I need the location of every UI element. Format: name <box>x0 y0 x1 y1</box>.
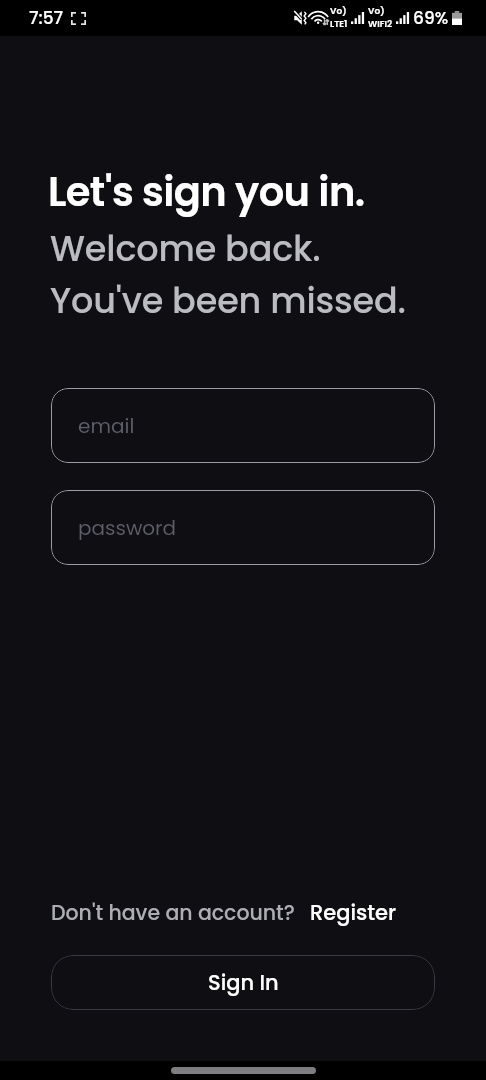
staticText: 7:57 <box>29 6 64 30</box>
staticText: WIFI2 <box>368 18 393 31</box>
other: Ringer muted, vibrate <box>294 11 307 25</box>
button[interactable]: Sign In <box>51 955 435 1010</box>
other: Wi-Fi connected <box>311 12 328 25</box>
staticText: LTE1 <box>330 18 348 31</box>
other: Home <box>171 1067 316 1074</box>
button[interactable]: Register <box>310 898 397 927</box>
button[interactable]: email <box>51 388 435 463</box>
staticText: 69% <box>413 6 449 30</box>
staticText: Vo) <box>330 5 347 18</box>
staticText: password <box>78 514 177 542</box>
staticText: Vo) <box>368 5 385 18</box>
other: Screenshot <box>71 12 86 25</box>
other: Signal strength <box>396 12 409 24</box>
other: Signal strength <box>351 12 364 24</box>
staticText: Don't have an account? <box>51 898 295 927</box>
staticText: Sign In <box>208 968 279 997</box>
staticText: Register <box>310 898 397 927</box>
staticText: Welcome back. You've been missed. <box>50 224 406 325</box>
staticText: Let's sign you in. <box>48 164 365 220</box>
other: Battery 69 percent <box>452 11 462 25</box>
staticText: email <box>78 412 135 440</box>
button[interactable]: password <box>51 490 435 565</box>
